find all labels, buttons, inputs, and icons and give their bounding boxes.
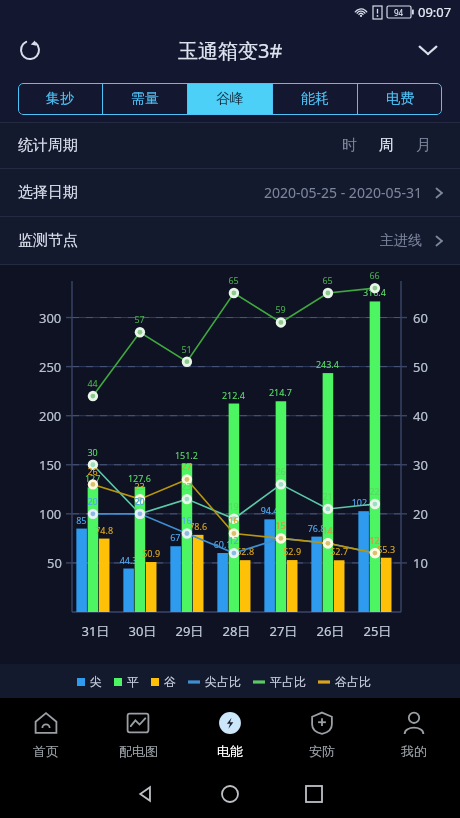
staticText: 2020-05-25 - 2020-05-31 (264, 183, 422, 202)
button[interactable]: 谷峰 (188, 83, 272, 115)
button[interactable]: Home (188, 770, 272, 818)
staticText: 统计周期 (18, 136, 78, 155)
staticText: 能耗 (301, 90, 329, 108)
staticText: 玉通箱变3# (178, 37, 283, 64)
button[interactable]: 集抄 (18, 83, 102, 115)
staticText: 尖 (90, 674, 102, 689)
button[interactable]: 周 (368, 136, 405, 155)
button[interactable]: 配电图 (92, 698, 184, 770)
staticText: 我的 (401, 743, 427, 759)
staticText: 94 (394, 7, 404, 18)
staticText: 月 (416, 136, 431, 155)
button[interactable]: 安防 (276, 698, 368, 770)
button[interactable]: 监测节点 (0, 217, 460, 264)
button[interactable]: 月 (405, 136, 442, 155)
button[interactable]: Back (104, 770, 188, 818)
staticText: 主进线 (380, 232, 422, 250)
staticText: 平 (127, 674, 139, 689)
staticText: 电能 (217, 743, 243, 759)
button[interactable]: 首页 (0, 698, 92, 770)
staticText: 集抄 (46, 90, 74, 108)
staticText: 谷占比 (335, 674, 371, 689)
staticText: 谷 (164, 674, 176, 689)
button[interactable]: Expand (406, 28, 450, 72)
button[interactable]: 电费 (358, 83, 442, 115)
staticText: 尖占比 (205, 674, 241, 689)
staticText: 配电图 (119, 743, 158, 759)
staticText: 平占比 (270, 674, 306, 689)
staticText: 时 (342, 136, 357, 155)
staticText: 首页 (33, 743, 59, 759)
button[interactable]: 统计周期 (0, 123, 460, 168)
staticText: 09:07 (418, 3, 452, 21)
button[interactable]: 电能 (184, 698, 276, 770)
button[interactable]: 时 (331, 136, 368, 155)
staticText: 监测节点 (18, 231, 78, 250)
staticText: 谷峰 (216, 90, 244, 108)
staticText: 周 (379, 136, 394, 155)
button[interactable]: 需量 (103, 83, 187, 115)
staticText: 安防 (309, 743, 335, 759)
button[interactable]: 选择日期 (0, 169, 460, 216)
staticText: 需量 (131, 90, 159, 108)
button[interactable]: 能耗 (273, 83, 357, 115)
staticText: 选择日期 (18, 183, 78, 202)
button[interactable]: Recents (272, 770, 356, 818)
button[interactable]: 我的 (368, 698, 460, 770)
button[interactable]: Refresh (8, 28, 52, 72)
staticText: 电费 (386, 90, 414, 108)
